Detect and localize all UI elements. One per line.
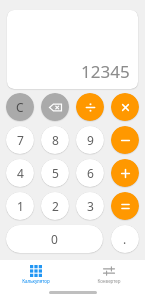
staticText: 5 bbox=[52, 165, 59, 181]
staticText: . bbox=[123, 231, 127, 247]
button[interactable]: 6 bbox=[76, 159, 104, 187]
staticText: 0 bbox=[51, 231, 58, 247]
button[interactable]: 3 bbox=[76, 192, 104, 220]
staticText: 9 bbox=[87, 132, 94, 148]
staticText: Конвертер bbox=[97, 278, 121, 284]
staticText: 6 bbox=[87, 165, 94, 181]
button[interactable]: 4 bbox=[6, 159, 34, 187]
button[interactable]: 8 bbox=[41, 126, 69, 154]
button[interactable]: Equals bbox=[111, 192, 139, 220]
button[interactable]: Конвертер bbox=[72, 260, 145, 288]
staticText: 1 bbox=[17, 198, 24, 214]
button[interactable]: Divide bbox=[76, 93, 104, 121]
button[interactable]: 5 bbox=[41, 159, 69, 187]
button[interactable]: 7 bbox=[6, 126, 34, 154]
staticText: Калькулятор bbox=[22, 278, 50, 284]
button[interactable]: Plus bbox=[111, 159, 139, 187]
staticText: 2 bbox=[52, 198, 59, 214]
button[interactable]: Backspace bbox=[41, 93, 69, 121]
button[interactable]: C bbox=[6, 93, 34, 121]
button[interactable]: . bbox=[111, 225, 139, 253]
button[interactable]: 1 bbox=[6, 192, 34, 220]
button[interactable]: Multiply bbox=[111, 93, 139, 121]
staticText: 7 bbox=[17, 132, 24, 148]
staticText: C bbox=[16, 99, 24, 115]
button[interactable]: Калькулятор bbox=[0, 260, 72, 288]
staticText: 12345 bbox=[81, 60, 130, 83]
button[interactable]: Minus bbox=[111, 126, 139, 154]
staticText: 4 bbox=[17, 165, 24, 181]
staticText: 8 bbox=[52, 132, 59, 148]
button[interactable]: 9 bbox=[76, 126, 104, 154]
button[interactable]: 2 bbox=[41, 192, 69, 220]
staticText: 3 bbox=[87, 198, 94, 214]
button[interactable]: 0 bbox=[6, 225, 103, 253]
